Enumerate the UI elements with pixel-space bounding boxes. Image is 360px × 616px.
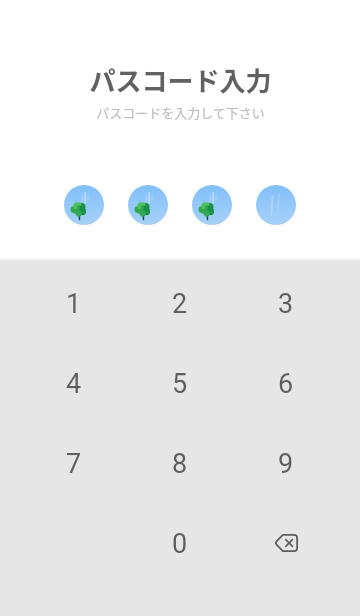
button[interactable]: 8	[127, 424, 233, 504]
staticText: パスコードを入力して下さい	[96, 103, 265, 122]
button[interactable]: 6	[233, 344, 339, 424]
staticText: 1	[66, 288, 82, 320]
staticText: 5	[172, 368, 188, 400]
staticText: 9	[278, 448, 294, 480]
staticText: 6	[278, 368, 294, 400]
button[interactable]: Backspace	[233, 504, 339, 584]
other: Backspace	[274, 534, 298, 552]
button[interactable]: 3	[233, 264, 339, 344]
staticText: 0	[172, 528, 188, 560]
button[interactable]: 5	[127, 344, 233, 424]
button[interactable]: 2	[127, 264, 233, 344]
staticText: 3	[278, 288, 294, 320]
button[interactable]: 0	[127, 504, 233, 584]
staticText: 7	[66, 448, 82, 480]
staticText: 8	[172, 448, 188, 480]
button[interactable]: 9	[233, 424, 339, 504]
staticText: 4	[66, 368, 82, 400]
staticText: 2	[172, 288, 188, 320]
staticText: パスコード入力	[89, 61, 272, 99]
button[interactable]: 1	[21, 264, 127, 344]
button[interactable]: 7	[21, 424, 127, 504]
button[interactable]: 4	[21, 344, 127, 424]
